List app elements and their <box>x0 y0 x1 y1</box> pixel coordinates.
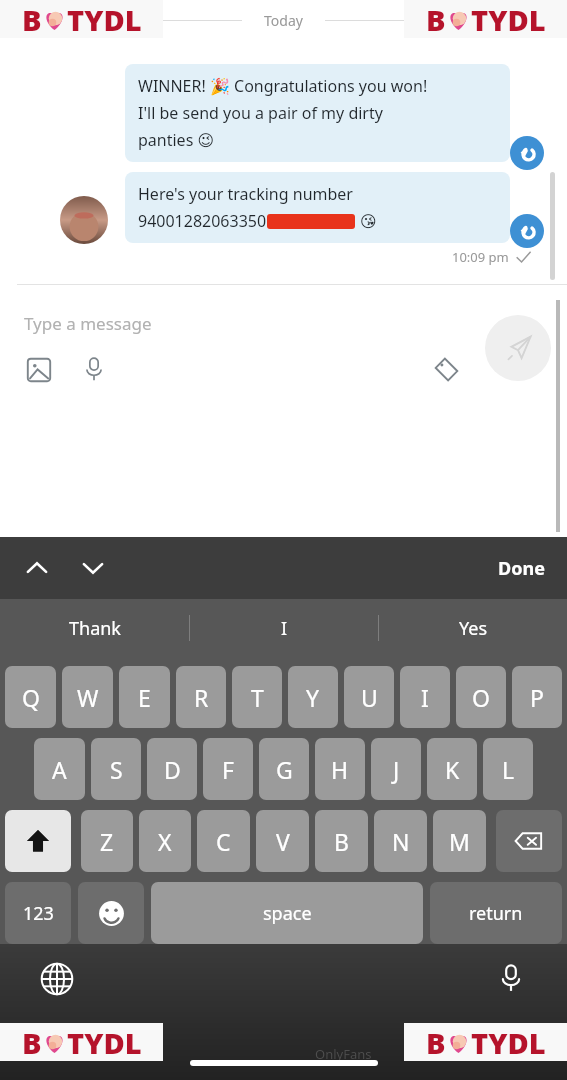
staticText: TYDL <box>67 0 142 38</box>
button[interactable]: P <box>512 666 562 728</box>
button[interactable]: Q <box>5 666 56 728</box>
staticText: Q <box>22 682 40 713</box>
staticText: Yes <box>459 616 488 641</box>
staticText: Thank <box>69 616 121 641</box>
staticText: 123 <box>23 901 54 926</box>
staticText: U <box>361 682 378 713</box>
button[interactable]: Price tag <box>430 353 463 386</box>
staticText: B <box>22 0 42 38</box>
staticText: Here's your tracking number <box>138 183 353 205</box>
button[interactable]: Emoji <box>78 882 144 944</box>
staticText: V <box>276 826 290 857</box>
staticText: WINNER! 🎉 Congratulations you won! <box>138 75 428 97</box>
button[interactable]: space <box>151 882 423 944</box>
staticText: 😘 <box>360 212 377 231</box>
staticText: B <box>22 1023 42 1061</box>
button[interactable]: Change keyboard <box>38 960 76 998</box>
button[interactable]: WINNER! 🎉 Congratulations you won! <box>125 64 510 162</box>
staticText: W <box>77 682 99 713</box>
button[interactable]: K <box>427 738 477 800</box>
button[interactable]: Here's your tracking number <box>125 172 510 243</box>
button[interactable]: A <box>34 738 85 800</box>
staticText: H <box>331 754 349 785</box>
staticText: TYDL <box>471 1023 546 1061</box>
staticText: space <box>263 901 312 926</box>
button[interactable]: Dictate <box>491 958 531 998</box>
button[interactable]: Next field <box>72 547 114 589</box>
button[interactable]: I <box>400 666 450 728</box>
button[interactable]: U <box>344 666 394 728</box>
staticText: A <box>52 754 67 785</box>
button[interactable]: L <box>483 738 533 800</box>
staticText: L <box>502 754 515 785</box>
staticText: 10:09 pm <box>452 248 509 266</box>
button[interactable]: return <box>430 882 562 944</box>
button[interactable]: O <box>456 666 506 728</box>
staticText: P <box>530 682 544 713</box>
staticText: E <box>138 682 151 713</box>
staticText: Today <box>264 11 303 30</box>
button[interactable]: H <box>315 738 365 800</box>
staticText: D <box>164 754 181 785</box>
button[interactable]: Backspace <box>496 810 562 872</box>
staticText: T <box>251 682 264 713</box>
button[interactable]: T <box>232 666 282 728</box>
button[interactable]: V <box>256 810 309 872</box>
staticText: M <box>449 826 470 857</box>
staticText: return <box>469 901 523 926</box>
staticText: R <box>194 682 209 713</box>
button[interactable]: J <box>371 738 421 800</box>
button[interactable]: M <box>433 810 486 872</box>
staticText: panties 😉 <box>138 129 215 151</box>
button[interactable]: C <box>197 810 250 872</box>
staticText: F <box>222 754 234 785</box>
button[interactable]: G <box>259 738 309 800</box>
button[interactable]: Thank <box>0 599 189 657</box>
staticText: O <box>472 682 490 713</box>
staticText: TYDL <box>67 1023 142 1061</box>
button[interactable] <box>60 196 108 244</box>
staticText: S <box>110 754 123 785</box>
staticText: B <box>426 1023 446 1061</box>
staticText: G <box>276 754 293 785</box>
button[interactable]: Reply <box>510 136 544 170</box>
staticText: OnlyFans <box>315 1045 372 1063</box>
button[interactable]: E <box>119 666 170 728</box>
staticText: K <box>445 754 460 785</box>
button[interactable]: W <box>62 666 113 728</box>
button[interactable]: Send <box>485 315 551 381</box>
button[interactable]: Done <box>492 548 551 589</box>
button[interactable]: Y <box>288 666 338 728</box>
staticText: I'll be send you a pair of my dirty <box>138 102 383 124</box>
button[interactable]: Add image <box>24 355 54 385</box>
button[interactable]: I <box>190 599 378 657</box>
staticText: TYDL <box>471 0 546 38</box>
staticText: N <box>392 826 410 857</box>
button[interactable]: R <box>176 666 226 728</box>
button[interactable]: Voice message <box>78 353 110 385</box>
button[interactable]: D <box>147 738 197 800</box>
staticText: B <box>334 826 349 857</box>
button[interactable]: Z <box>81 810 133 872</box>
staticText: X <box>158 826 172 857</box>
staticText: I <box>421 682 429 713</box>
button[interactable]: X <box>139 810 191 872</box>
staticText: Y <box>306 682 320 713</box>
staticText: I <box>281 616 288 641</box>
staticText: B <box>426 0 446 38</box>
button[interactable]: Yes <box>379 599 567 657</box>
staticText: Done <box>498 556 545 581</box>
staticText: Z <box>100 826 114 857</box>
button[interactable]: Previous field <box>16 547 58 589</box>
staticText: C <box>216 826 231 857</box>
button[interactable]: Reply <box>510 214 544 248</box>
button[interactable]: S <box>91 738 141 800</box>
button[interactable]: N <box>374 810 427 872</box>
button[interactable]: F <box>203 738 253 800</box>
staticText: Type a message <box>24 312 152 335</box>
staticText: 94001282063350 <box>138 210 267 232</box>
button[interactable]: 123 <box>5 882 71 944</box>
button[interactable]: Shift <box>5 810 71 872</box>
staticText: J <box>393 754 400 785</box>
button[interactable]: B <box>315 810 368 872</box>
